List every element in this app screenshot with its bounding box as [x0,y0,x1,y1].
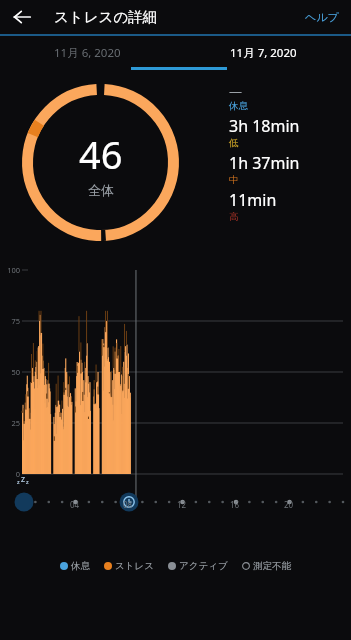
button[interactable]: 休息 [59,558,91,574]
button[interactable]: Back [6,1,38,33]
staticText: z [26,478,29,485]
staticText: 1h 37min [229,152,300,174]
staticText: 11月 6, 2020 [54,45,121,61]
staticText: 12 [177,499,187,510]
button[interactable]: 測定不能 [241,558,292,574]
staticText: 08 [123,499,133,510]
staticText: 0 [2,469,20,479]
staticText: 16 [230,499,240,510]
staticText: ストレスの詳細 [54,8,158,26]
staticText: アクティブ [179,560,228,572]
staticText: 100 [2,265,20,275]
staticText: 低 [229,137,239,149]
staticText: — [229,82,243,100]
staticText: 75 [2,316,20,326]
staticText: 中 [229,174,239,186]
staticText: 50 [2,367,20,377]
staticText: 測定不能 [253,560,291,572]
staticText: 高 [229,211,239,223]
staticText: 25 [2,418,20,428]
staticText: 11min [229,189,277,211]
staticText: z [17,478,20,485]
button[interactable]: ストレス [103,558,155,574]
staticText: 11月 7, 2020 [230,45,297,61]
staticText: 04 [70,499,80,510]
staticText: 3h 18min [229,115,300,137]
staticText: 46 [79,128,123,180]
staticText: 休息 [71,560,90,572]
staticText: ストレス [115,560,154,572]
button[interactable]: アクティブ [167,558,229,574]
button[interactable]: 11月 6, 2020 [0,36,175,70]
button[interactable]: ヘルプ [297,4,347,30]
button[interactable]: 11月 7, 2020 [175,36,351,70]
staticText: Z [21,475,26,485]
staticText: ヘルプ [305,10,339,24]
staticText: 全体 [88,182,114,198]
staticText: 20 [284,499,294,510]
staticText: 休息 [229,100,248,112]
